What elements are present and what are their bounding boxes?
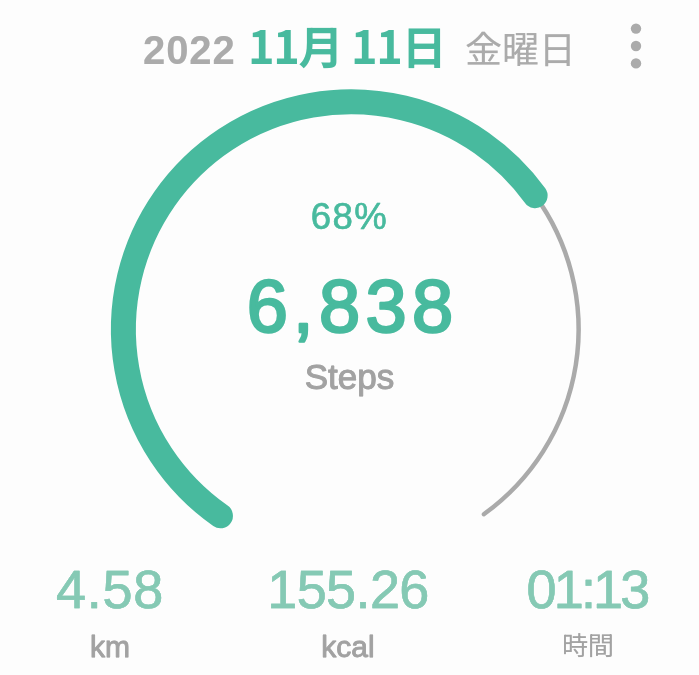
staticText: 68% xyxy=(0,196,699,237)
staticText: 155.26 xyxy=(218,559,478,619)
staticText: 68% xyxy=(0,196,699,237)
staticText: Steps xyxy=(0,357,699,396)
staticText: km xyxy=(0,630,240,664)
staticText: 4.58 xyxy=(0,559,240,619)
staticText: 6,838 xyxy=(3,265,699,348)
staticText: km xyxy=(0,630,240,664)
staticText: 6,838 xyxy=(3,265,699,348)
button[interactable]: 4.58 xyxy=(0,559,240,663)
staticText: 01:13 xyxy=(457,559,699,619)
button[interactable]: More options xyxy=(612,22,660,70)
staticText: kcal xyxy=(218,630,478,664)
staticText: 11月 11日 xyxy=(248,12,468,77)
staticText: 155.26 xyxy=(218,559,478,619)
button[interactable]: 01:13 xyxy=(458,559,699,663)
staticText: 時間 xyxy=(458,625,699,663)
staticText: 2022 xyxy=(143,28,263,73)
staticText: 金曜日 xyxy=(465,20,615,74)
button[interactable]: 155.26 xyxy=(218,559,478,663)
staticText: 01:13 xyxy=(457,559,699,619)
staticText: Steps xyxy=(0,357,699,396)
staticText: 4.58 xyxy=(0,559,240,619)
staticText: kcal xyxy=(218,630,478,664)
